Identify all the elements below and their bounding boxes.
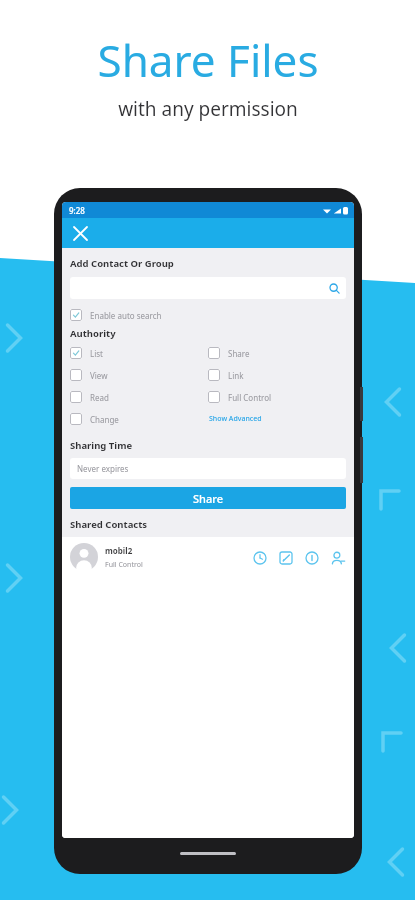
staticText: Full Control [228,392,272,403]
button[interactable]: Share [208,347,250,359]
button[interactable]: Read [70,391,109,403]
staticText: mobil2 [105,545,133,556]
button[interactable]: Share [70,487,346,509]
button[interactable]: Info [303,549,320,566]
button[interactable]: Enable auto search [70,309,162,321]
button[interactable] [70,277,346,299]
button[interactable]: Show Advanced [208,413,262,424]
staticText: List [90,348,103,359]
staticText: Sharing Time [70,439,133,452]
staticText: Share Files [97,30,319,90]
staticText: Read [90,392,109,403]
staticText: Enable auto search [90,310,162,321]
staticText: 9:28 [69,205,85,216]
staticText: Add Contact Or Group [70,257,174,270]
button[interactable]: Never expires [70,458,346,479]
staticText: Change [90,414,119,425]
button[interactable]: Link [208,369,244,381]
button[interactable]: mobil2 [70,543,346,571]
staticText: Never expires [77,463,129,474]
button[interactable]: Remove user [329,549,346,566]
button[interactable]: Expiry time [251,549,268,566]
button[interactable]: Full Control [208,391,272,403]
staticText: with any permission [118,96,298,122]
staticText: Share [228,348,250,359]
staticText: Full Control [105,560,143,570]
staticText: Share [193,491,223,506]
staticText: Show Advanced [209,414,262,424]
button[interactable]: List [70,347,103,359]
staticText: Link [228,370,244,381]
button[interactable]: Edit [277,549,294,566]
staticText: Shared Contacts [70,518,148,531]
button[interactable]: View [70,369,108,381]
button[interactable]: Close [68,221,92,245]
button[interactable]: Change [70,413,119,425]
staticText: Authority [70,327,116,340]
staticText: View [90,370,108,381]
